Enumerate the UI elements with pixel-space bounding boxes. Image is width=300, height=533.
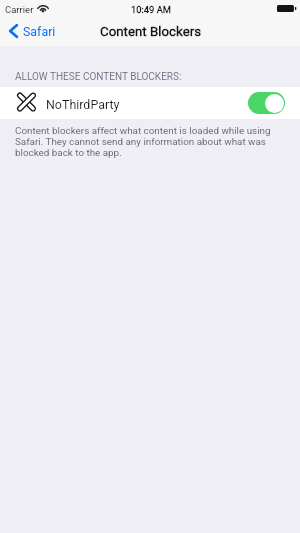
staticText: ALLOW THESE CONTENT BLOCKERS: [15, 71, 182, 83]
staticText: Content blockers affect what content is … [15, 125, 271, 158]
staticText: NoThirdParty [46, 97, 120, 112]
staticText: Carrier [5, 4, 34, 15]
button[interactable]: Safari [3, 20, 64, 43]
button[interactable]: Toggle NoThirdParty content blocker [248, 92, 285, 114]
staticText: 10:49 AM [131, 4, 172, 15]
staticText: Content Blockers [100, 24, 202, 40]
staticText: Safari [23, 24, 56, 39]
button[interactable]: NoThirdParty [0, 87, 300, 119]
